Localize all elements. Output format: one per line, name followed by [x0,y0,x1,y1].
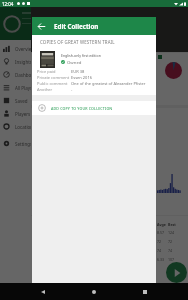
button[interactable]: Log play [166,262,187,283]
staticText: Public comment [37,81,71,86]
button[interactable]: Overview [0,42,31,55]
button[interactable]: Home [86,284,102,300]
staticText: 74 [168,248,173,253]
button[interactable]: Locations [0,120,31,133]
staticText: Saved [15,98,28,104]
button[interactable]: Players [0,107,31,120]
button[interactable]: Back [32,17,50,35]
staticText: 6.33 [157,257,168,262]
button[interactable]: All Plays [0,81,31,94]
staticText: EUR 38 [71,69,85,74]
staticText: Insights [15,59,31,65]
staticText: 8.57 [157,230,168,235]
button[interactable]: Settings [0,137,31,150]
staticText: Owned [67,59,82,65]
staticText: 72 [168,239,173,244]
staticText: Overview [15,46,31,52]
staticText: Essen 2016 [71,75,92,80]
staticText: One of the greatest of Alexander Pfister [71,81,146,86]
staticText: Price paid [37,69,71,74]
staticText: Another comment [37,87,71,92]
staticText: 107 [168,257,175,262]
staticText: Settings [15,141,31,147]
staticText: Players [15,111,31,117]
staticText: Avge [157,222,168,227]
button[interactable]: Dashboard [0,68,31,81]
staticText: Edit Collection [54,22,99,30]
staticText: 74 [157,248,168,253]
staticText: English-only first edition [61,53,101,58]
staticText: Private comment [37,75,71,80]
button[interactable]: Back [35,284,51,300]
button[interactable]: Recent apps [137,284,153,300]
button[interactable]: ADD COPY TO YOUR COLLECTION [32,101,156,115]
staticText: 72 [157,239,168,244]
staticText: 124 [168,230,175,235]
staticText: Best [168,222,176,227]
staticText: COPIES OF GREAT WESTERN TRAIL [40,39,115,45]
staticText: - [71,87,73,92]
button[interactable]: Saved [0,94,31,107]
staticText: 12:04 [2,1,14,7]
staticText: All Plays [15,85,31,91]
button[interactable]: Insights [0,55,31,68]
staticText: Locations [15,124,31,130]
staticText: Dashboard [15,72,31,78]
staticText: ADD COPY TO YOUR COLLECTION [51,106,113,111]
